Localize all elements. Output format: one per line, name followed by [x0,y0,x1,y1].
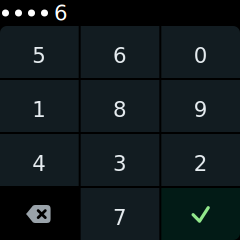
staticText: 4 [32,151,46,176]
staticText: 6 [54,1,68,25]
button[interactable]: 6 [81,26,159,78]
button[interactable]: 7 [81,188,159,240]
button[interactable]: Confirm [161,188,240,240]
button[interactable]: 0 [161,26,240,78]
button[interactable]: 4 [0,134,79,186]
button[interactable]: 3 [81,134,159,186]
staticText: 8 [113,97,127,122]
button[interactable]: 2 [161,134,240,186]
staticText: 6 [113,43,127,68]
button[interactable]: 9 [161,80,240,132]
staticText: 2 [194,151,208,176]
button[interactable]: 1 [0,80,79,132]
staticText: 5 [32,43,46,68]
button[interactable]: 8 [81,80,159,132]
staticText: 9 [194,97,208,122]
button[interactable]: Delete [0,188,79,240]
staticText: 3 [113,151,127,176]
staticText: 0 [194,43,208,68]
staticText: 1 [32,97,46,122]
staticText: 7 [113,205,127,230]
button[interactable]: 5 [0,26,79,78]
